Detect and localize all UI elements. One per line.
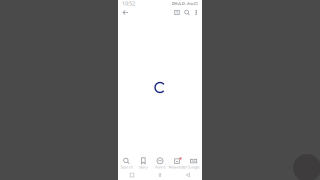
button[interactable]: More options <box>192 7 200 18</box>
button[interactable]: Search <box>182 7 192 18</box>
button[interactable]: Home <box>146 170 174 179</box>
button[interactable]: Search <box>118 157 135 169</box>
button[interactable]: Back <box>120 7 131 18</box>
button[interactable]: Tabs <box>172 7 182 18</box>
staticText: Google <box>188 164 200 170</box>
staticText: 10:52 <box>122 0 135 7</box>
button[interactable]: Home <box>152 157 168 169</box>
staticText: Newsletter <box>168 164 187 170</box>
button[interactable]: Google <box>185 157 202 169</box>
staticText: Home <box>154 164 165 170</box>
button[interactable]: Newsletter <box>168 157 185 169</box>
button[interactable]: Story <box>135 157 152 169</box>
button[interactable]: Recents <box>118 170 146 179</box>
staticText: Search <box>120 164 132 170</box>
staticText: Story <box>139 164 148 170</box>
button[interactable]: Back <box>174 170 202 179</box>
